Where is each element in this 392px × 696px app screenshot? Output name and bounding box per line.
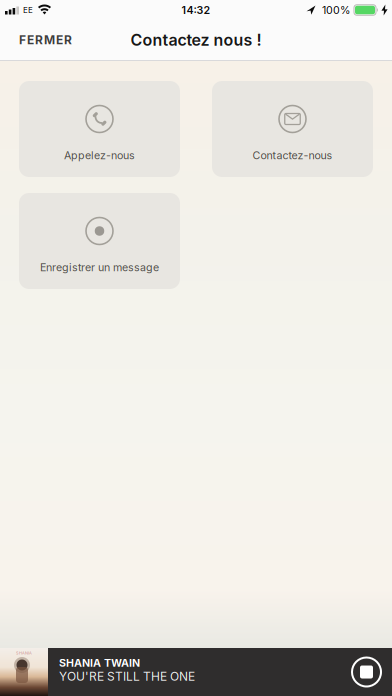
staticText: YOU'RE STILL THE ONE <box>59 669 195 683</box>
staticText: SHANIA TWAIN <box>59 657 140 669</box>
staticText: Enregistrer un message <box>40 261 159 274</box>
staticText: 100% <box>322 4 350 16</box>
staticText: SHANIA <box>16 651 32 655</box>
staticText: F E R M E R <box>19 33 72 47</box>
button[interactable]: Contactez-nous <box>212 81 373 177</box>
button[interactable]: Appelez-nous <box>19 81 180 177</box>
staticText: EE <box>23 5 33 15</box>
staticText: Appelez-nous <box>64 149 135 162</box>
staticText: Contactez nous ! <box>130 31 261 49</box>
staticText: Contactez-nous <box>252 149 332 162</box>
staticText: 14:32 <box>181 4 210 16</box>
button[interactable]: F E R M E R <box>0 25 72 55</box>
button[interactable]: Enregistrer un message <box>19 193 180 289</box>
button[interactable]: Stop <box>351 656 382 687</box>
